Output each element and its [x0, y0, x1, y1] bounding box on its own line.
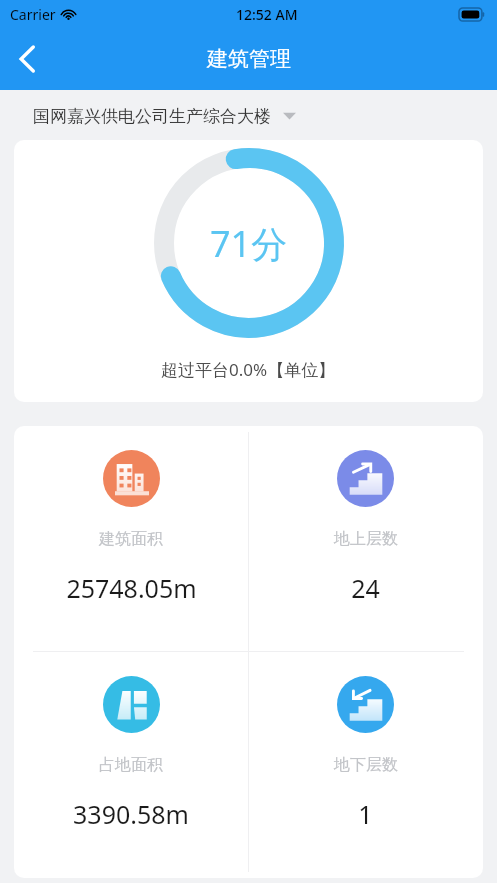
button[interactable]: 国网嘉兴供电公司生产综合大楼 [0, 98, 497, 134]
staticText: 建筑管理 [207, 46, 291, 72]
staticText: 地上层数 [334, 529, 398, 549]
button[interactable]: 建筑面积 [14, 426, 248, 651]
staticText: 25748.05m [66, 571, 197, 605]
staticText: 地下层数 [334, 755, 398, 775]
staticText: 71分 [210, 219, 288, 268]
staticText: 24 [351, 571, 380, 605]
button[interactable]: 地下层数 [248, 652, 483, 878]
staticText: Carrier [10, 5, 56, 24]
staticText: 3390.58m [73, 797, 189, 831]
button[interactable]: 占地面积 [14, 652, 248, 878]
staticText: 国网嘉兴供电公司生产综合大楼 [33, 106, 271, 127]
staticText: 12:52 AM [236, 5, 298, 24]
staticText: 建筑面积 [99, 529, 163, 549]
staticText: 1 [358, 797, 373, 831]
button[interactable]: 地上层数 [248, 426, 483, 651]
staticText: 占地面积 [99, 755, 163, 775]
staticText: 超过平台0.0%【单位】 [161, 358, 336, 381]
button[interactable]: Back [0, 32, 54, 86]
